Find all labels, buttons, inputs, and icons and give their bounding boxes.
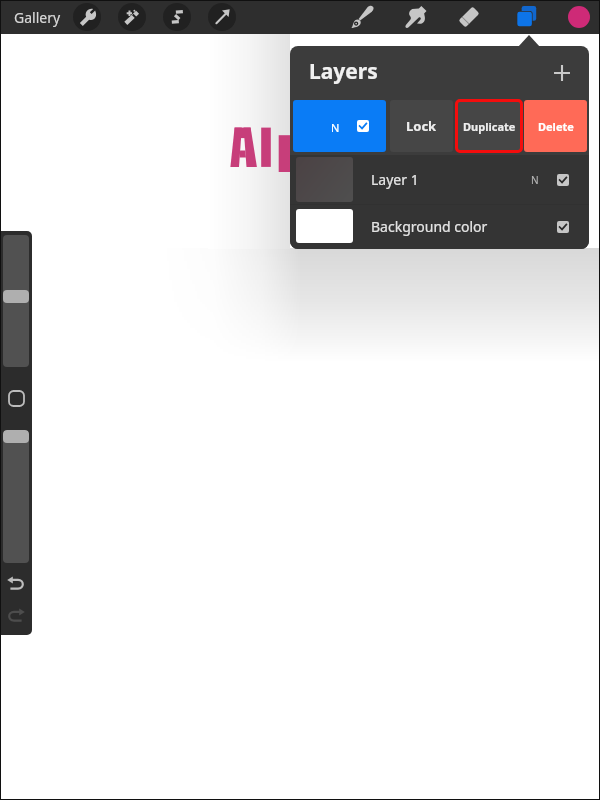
button[interactable]: Redo: [6, 605, 26, 625]
button[interactable]: Visible: [557, 174, 569, 186]
staticText: Layers: [309, 57, 378, 86]
button[interactable]: Layers: [512, 3, 540, 31]
button[interactable]: Layer 1: [290, 155, 589, 204]
staticText: N: [331, 120, 340, 135]
button[interactable]: Lock: [390, 100, 453, 152]
button[interactable]: Transform: [208, 3, 236, 31]
staticText: Delete: [538, 119, 574, 134]
button[interactable]: Add layer: [548, 59, 576, 87]
button[interactable]: Modify: [9, 391, 24, 406]
button[interactable]: Erase: [455, 3, 483, 31]
button[interactable]: N: [293, 100, 386, 152]
button[interactable]: Duplicate: [456, 100, 522, 152]
button[interactable]: Smudge: [403, 3, 431, 31]
button[interactable]: Paint: [349, 3, 377, 31]
staticText: Background color: [371, 217, 488, 236]
button[interactable]: Actions: [73, 3, 101, 31]
staticText: Layer 1: [371, 170, 419, 189]
staticText: N: [531, 173, 539, 187]
staticText: Lock: [406, 117, 437, 135]
button[interactable]: Brush size: [3, 235, 29, 367]
button[interactable]: Background color: [290, 205, 589, 249]
button[interactable]: Visible: [557, 221, 569, 233]
button[interactable]: Selection: [163, 3, 191, 31]
staticText: Duplicate: [463, 119, 516, 134]
button[interactable]: Undo: [6, 573, 26, 593]
button[interactable]: Adjustments: [118, 3, 146, 31]
button[interactable]: Opacity: [3, 430, 29, 563]
button[interactable]: Delete: [524, 100, 587, 152]
button[interactable]: Gallery: [14, 8, 61, 27]
button[interactable]: Colour: [568, 6, 590, 28]
